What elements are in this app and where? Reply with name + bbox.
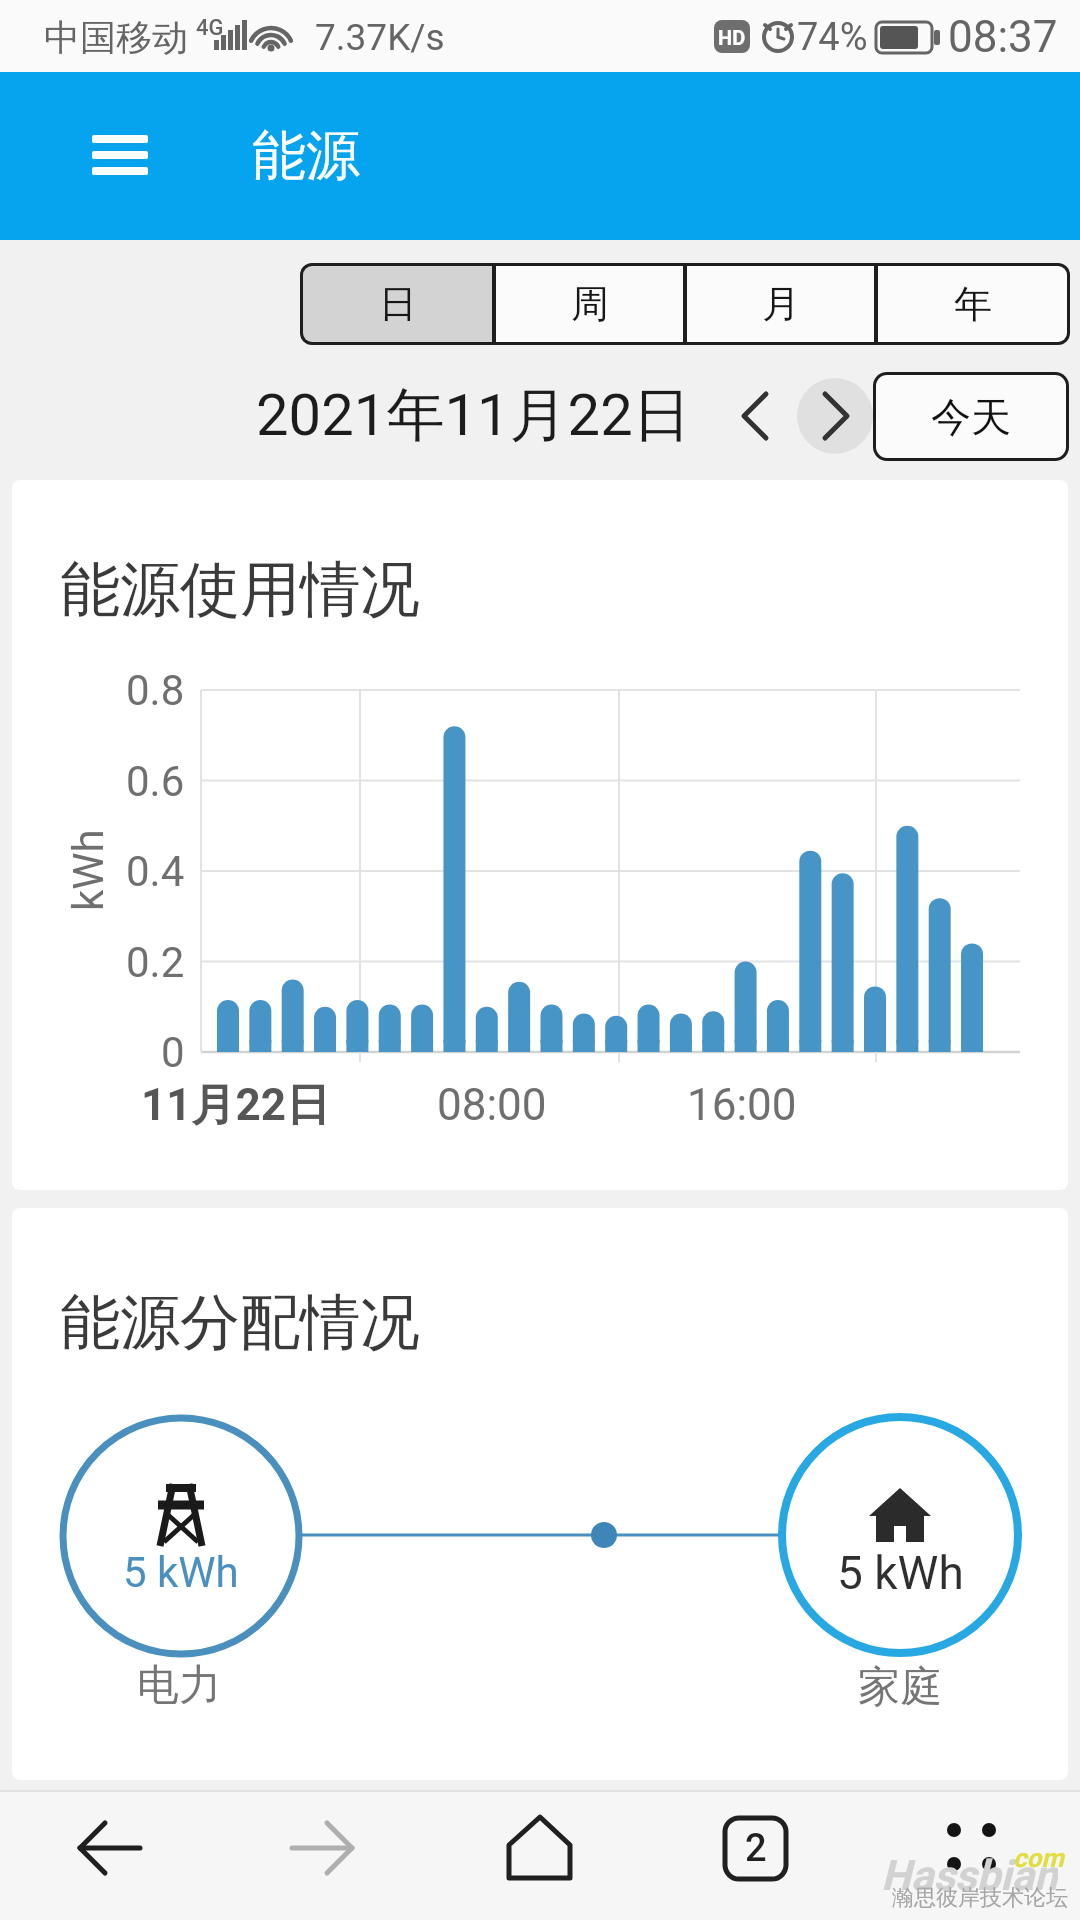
- button[interactable]: 月: [687, 266, 874, 342]
- button[interactable]: [216, 1790, 432, 1920]
- staticText: 0.2: [126, 938, 185, 987]
- button[interactable]: [76, 119, 164, 191]
- staticText: 周: [571, 280, 609, 328]
- staticText: 74%: [797, 15, 868, 60]
- button[interactable]: [722, 372, 788, 438]
- staticText: 16:00: [687, 1079, 797, 1131]
- button[interactable]: 年: [878, 266, 1067, 342]
- button[interactable]: [432, 1790, 648, 1920]
- button[interactable]: [864, 1790, 1080, 1920]
- staticText: 电力: [137, 1659, 221, 1712]
- staticText: 5 kWh: [837, 1546, 964, 1600]
- staticText: 08:37: [948, 11, 1058, 63]
- staticText: 5 kWh: [123, 1548, 239, 1597]
- staticText: 0: [161, 1028, 185, 1077]
- staticText: 2021年11月22日: [256, 379, 691, 452]
- staticText: 0.8: [126, 666, 185, 715]
- staticText: Hassbian: [881, 1851, 1058, 1899]
- staticText: 能源分配情况: [60, 1285, 420, 1361]
- button[interactable]: [63, 1418, 299, 1654]
- staticText: kWh: [64, 829, 113, 911]
- button[interactable]: [0, 1790, 216, 1920]
- button[interactable]: [648, 1790, 864, 1920]
- staticText: 家庭: [858, 1661, 942, 1714]
- staticText: 年: [954, 280, 992, 328]
- button[interactable]: [782, 1417, 1018, 1653]
- staticText: 0.4: [126, 847, 185, 896]
- staticText: 08:00: [437, 1079, 547, 1131]
- button[interactable]: 今天: [873, 372, 1069, 461]
- staticText: 今天: [931, 392, 1011, 442]
- button[interactable]: 周: [496, 266, 683, 342]
- staticText: 11月22日: [141, 1078, 330, 1133]
- staticText: 中国移动: [44, 15, 188, 60]
- staticText: 2: [745, 1826, 767, 1871]
- staticText: 月: [762, 280, 800, 328]
- button[interactable]: 日: [303, 266, 492, 342]
- staticText: 能源: [252, 122, 360, 190]
- staticText: 7.37K/s: [315, 16, 445, 59]
- staticText: 日: [379, 280, 417, 328]
- staticText: 瀚思彼岸技术论坛: [892, 1884, 1068, 1912]
- staticText: 能源使用情况: [60, 552, 420, 628]
- staticText: com: [1013, 1843, 1064, 1873]
- staticText: 0.6: [126, 757, 185, 806]
- staticText: 4G: [196, 15, 224, 41]
- staticText: HD: [718, 26, 746, 49]
